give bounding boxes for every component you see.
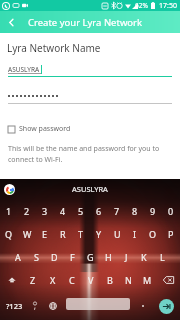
button[interactable]: N (119, 268, 138, 291)
button[interactable]: J (117, 245, 135, 268)
button[interactable]: Change language (45, 291, 61, 320)
button[interactable]: U (108, 222, 126, 245)
button[interactable]: Back (0, 11, 22, 33)
button[interactable]: 8 (126, 199, 144, 222)
staticText: 3 (42, 205, 48, 217)
staticText: Z (30, 274, 36, 286)
staticText: ?123 (6, 301, 23, 311)
staticText: X (50, 274, 56, 286)
staticText: Show password (19, 124, 71, 134)
staticText: Q (5, 228, 13, 240)
staticText: 9 (150, 205, 156, 217)
button[interactable]: 0 (162, 199, 180, 222)
button[interactable]: D (45, 245, 63, 268)
staticText: I (133, 228, 137, 240)
button[interactable]: F (63, 245, 81, 268)
button[interactable]: B (100, 268, 119, 291)
staticText: O (149, 228, 157, 240)
staticText: S (34, 251, 39, 263)
staticText: 7 (114, 205, 120, 217)
button[interactable]: Shift (0, 268, 23, 291)
staticText: Lyra Network Name (7, 41, 101, 55)
button[interactable]: Backspace (157, 268, 180, 291)
button[interactable]: 1 (0, 199, 18, 222)
button[interactable]: Show password (8, 124, 71, 134)
button[interactable]: Enter (159, 299, 174, 314)
button[interactable]: M (138, 268, 157, 291)
staticText: E (42, 228, 48, 240)
button[interactable]: Y (90, 222, 108, 245)
staticText: ASUSLYRA (72, 184, 108, 194)
button[interactable]: A (9, 245, 27, 268)
staticText: Y (96, 228, 102, 240)
staticText: A (15, 251, 21, 263)
staticText: R (60, 228, 66, 240)
button[interactable]: L (153, 245, 171, 268)
staticText: U (114, 228, 121, 240)
button[interactable]: Voice input (27, 291, 43, 320)
button[interactable]: Space (66, 298, 130, 310)
staticText: B (107, 274, 113, 286)
button[interactable]: O (144, 222, 162, 245)
button[interactable]: X (43, 268, 62, 291)
staticText: This will be the name and password for y… (8, 144, 160, 164)
staticText: 8 (132, 205, 138, 217)
button[interactable]: T (72, 222, 90, 245)
button[interactable]: 2 (18, 199, 36, 222)
button[interactable]: Google search (4, 184, 15, 195)
button[interactable]: Z (23, 268, 43, 291)
staticText: N (125, 274, 132, 286)
button[interactable]: V (81, 268, 100, 291)
button[interactable] (135, 291, 151, 320)
staticText: 6 (96, 205, 102, 217)
staticText: T (78, 228, 84, 240)
staticText: P (168, 228, 174, 240)
button[interactable]: H (99, 245, 117, 268)
staticText: 1 (6, 205, 12, 217)
staticText: V (88, 274, 94, 286)
staticText: G (87, 251, 94, 263)
staticText: 62% (135, 1, 148, 10)
staticText: H (105, 251, 112, 263)
staticText: 4 (60, 205, 66, 217)
button[interactable]: 3 (36, 199, 54, 222)
button[interactable]: W (18, 222, 36, 245)
staticText: J (125, 251, 128, 263)
staticText: F (70, 251, 75, 263)
button[interactable]: Q (0, 222, 18, 245)
button[interactable]: G (81, 245, 99, 268)
button[interactable]: 5 (72, 199, 90, 222)
button[interactable]: I (126, 222, 144, 245)
staticText: 17:50 (159, 1, 177, 11)
staticText: 2 (24, 205, 30, 217)
staticText: L (160, 251, 165, 263)
button[interactable]: ?123 (1, 291, 27, 320)
button[interactable]: K (135, 245, 153, 268)
button[interactable]: S (27, 245, 45, 268)
button[interactable]: 6 (90, 199, 108, 222)
button[interactable]: 7 (108, 199, 126, 222)
button[interactable]: C (62, 268, 81, 291)
button[interactable]: 9 (144, 199, 162, 222)
button[interactable]: 4 (54, 199, 72, 222)
staticText: Create your Lyra Network (28, 16, 143, 29)
staticText: 5 (78, 205, 84, 217)
staticText: C (69, 274, 75, 286)
staticText: M (143, 274, 152, 286)
staticText: D (51, 251, 58, 263)
button[interactable]: P (162, 222, 180, 245)
staticText: W (23, 228, 32, 240)
staticText: 0 (168, 205, 174, 217)
staticText: K (141, 251, 147, 263)
button[interactable]: E (36, 222, 54, 245)
button[interactable]: R (54, 222, 72, 245)
staticText: ASUSLYRA (8, 65, 40, 74)
